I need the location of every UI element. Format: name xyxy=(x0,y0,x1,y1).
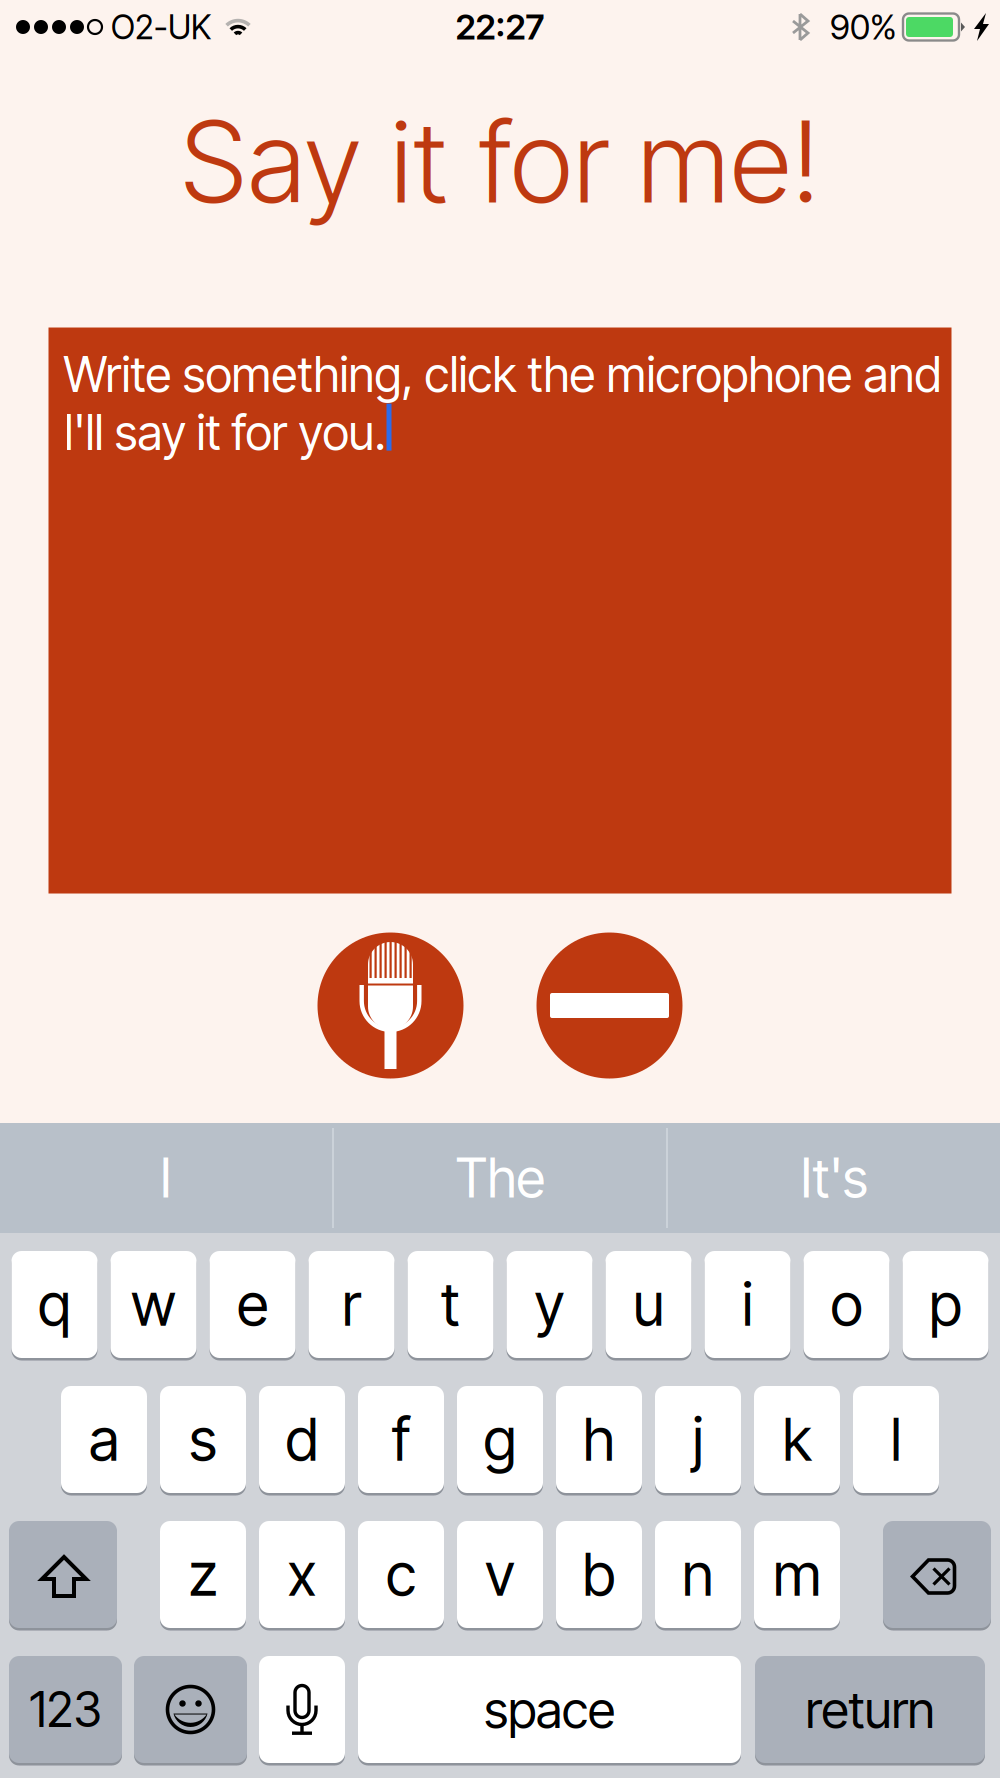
button[interactable]: n xyxy=(655,1521,741,1628)
staticText: v xyxy=(485,1539,515,1610)
button[interactable]: Dictation xyxy=(259,1656,345,1763)
staticText: n xyxy=(682,1539,714,1610)
staticText: I xyxy=(160,1146,172,1210)
button[interactable]: l xyxy=(853,1386,939,1493)
button[interactable]: return xyxy=(755,1656,985,1763)
button[interactable]: k xyxy=(754,1386,840,1493)
button[interactable]: d xyxy=(259,1386,345,1493)
button[interactable]: I xyxy=(0,1123,332,1233)
staticText: o xyxy=(830,1269,862,1340)
button[interactable]: h xyxy=(556,1386,642,1493)
button[interactable]: r xyxy=(308,1251,394,1358)
button[interactable]: space xyxy=(358,1656,741,1763)
staticText: a xyxy=(89,1404,119,1475)
staticText: c xyxy=(386,1539,416,1610)
button[interactable]: e xyxy=(209,1251,295,1358)
button[interactable]: 123 xyxy=(9,1656,122,1763)
staticText: i xyxy=(742,1269,753,1340)
button[interactable]: o xyxy=(803,1251,889,1358)
button[interactable]: a xyxy=(61,1386,147,1493)
staticText: x xyxy=(287,1539,316,1610)
staticText: I'll say it for you. xyxy=(63,404,385,462)
staticText: O2-UK xyxy=(111,7,211,47)
button[interactable]: u xyxy=(605,1251,691,1358)
staticText: Write something, click the microphone an… xyxy=(63,345,941,404)
staticText: z xyxy=(188,1539,217,1610)
button[interactable]: y xyxy=(506,1251,592,1358)
button[interactable]: The xyxy=(334,1123,666,1233)
button[interactable]: s xyxy=(160,1386,246,1493)
staticText: u xyxy=(633,1269,664,1340)
staticText: q xyxy=(38,1269,71,1340)
button[interactable]: i xyxy=(704,1251,790,1358)
button[interactable]: g xyxy=(457,1386,543,1493)
button[interactable]: w xyxy=(110,1251,196,1358)
staticText: 22:27 xyxy=(455,6,544,48)
staticText: w xyxy=(131,1269,176,1340)
staticText: It's xyxy=(800,1146,867,1210)
staticText: j xyxy=(692,1404,703,1475)
button[interactable]: Delete xyxy=(883,1521,991,1628)
button[interactable]: j xyxy=(655,1386,741,1493)
staticText: d xyxy=(285,1404,318,1475)
button[interactable]: m xyxy=(754,1521,840,1628)
staticText: space xyxy=(484,1679,615,1740)
button[interactable]: Stop xyxy=(536,932,682,1078)
staticText: p xyxy=(929,1269,962,1340)
button[interactable]: Record xyxy=(317,932,463,1078)
button[interactable]: c xyxy=(358,1521,444,1628)
button[interactable]: It's xyxy=(668,1123,1000,1233)
button[interactable]: t xyxy=(407,1251,493,1358)
staticText: y xyxy=(534,1269,564,1340)
staticText: The xyxy=(455,1146,544,1210)
button[interactable]: b xyxy=(556,1521,642,1628)
button[interactable]: v xyxy=(457,1521,543,1628)
button[interactable]: f xyxy=(358,1386,444,1493)
staticText: h xyxy=(583,1404,615,1475)
staticText: 123 xyxy=(29,1680,101,1739)
staticText: g xyxy=(483,1404,516,1475)
staticText: m xyxy=(773,1539,821,1610)
staticText: r xyxy=(342,1269,361,1340)
staticText: return xyxy=(805,1679,934,1740)
staticText: l xyxy=(890,1404,901,1475)
staticText: s xyxy=(189,1404,217,1475)
staticText: k xyxy=(782,1404,811,1475)
button[interactable]: q xyxy=(11,1251,97,1358)
staticText: 90% xyxy=(830,6,897,48)
button[interactable]: z xyxy=(160,1521,246,1628)
staticText: Say it for me! xyxy=(180,94,820,229)
button[interactable]: Shift xyxy=(9,1521,117,1628)
button[interactable]: p xyxy=(902,1251,988,1358)
staticText: t xyxy=(441,1269,460,1340)
button[interactable]: x xyxy=(259,1521,345,1628)
staticText: f xyxy=(392,1404,410,1475)
button[interactable]: Emoji xyxy=(134,1656,247,1763)
staticText: b xyxy=(582,1539,615,1610)
staticText: e xyxy=(237,1269,268,1340)
